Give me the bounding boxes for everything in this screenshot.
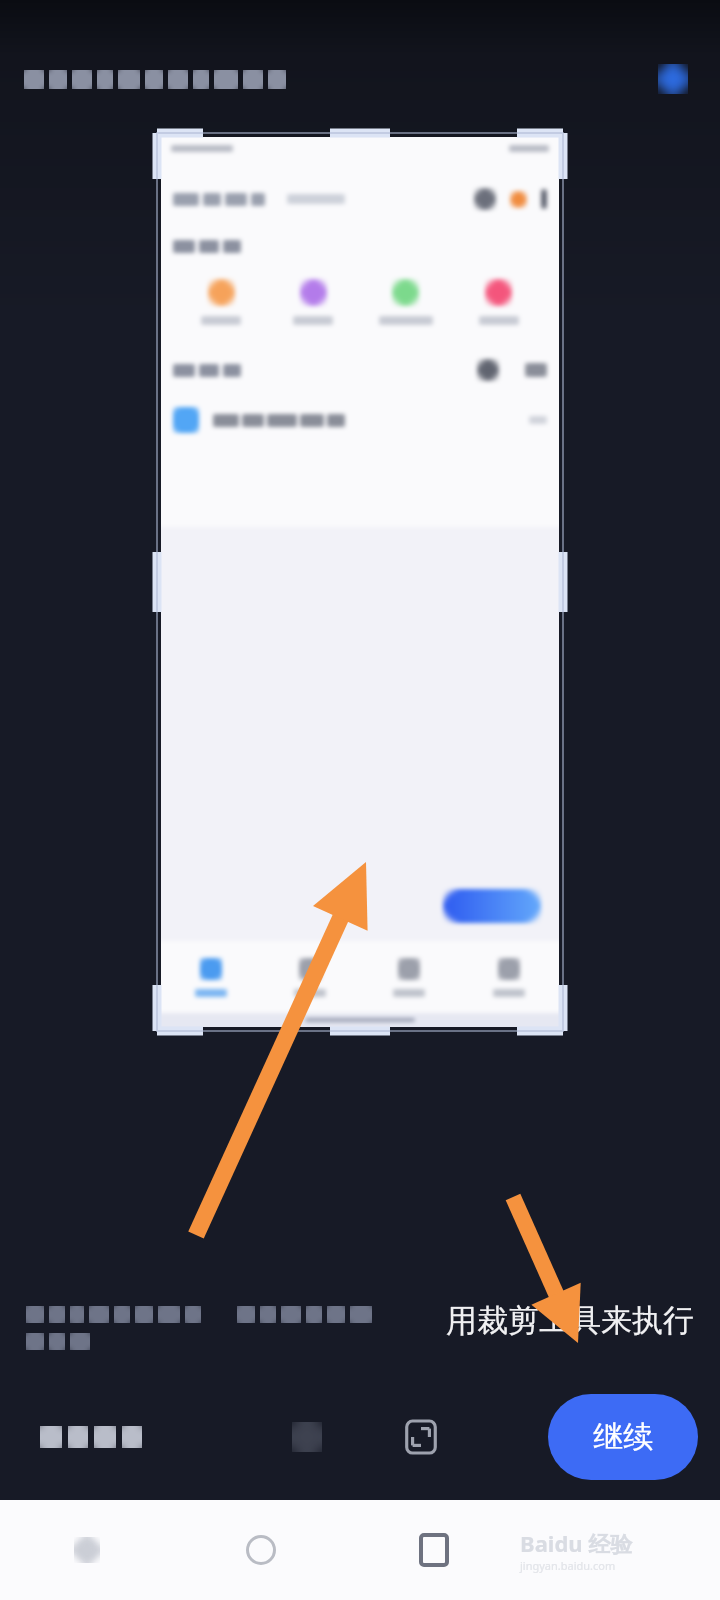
button[interactable]: Rotate	[276, 1406, 338, 1468]
staticText: 继续	[593, 1418, 653, 1456]
button[interactable]: Home	[174, 1500, 347, 1600]
button[interactable]: More options	[650, 56, 696, 102]
staticText: Baidu 经验	[520, 1528, 633, 1558]
button[interactable]: 继续	[548, 1394, 698, 1480]
button[interactable]: Recents	[347, 1500, 520, 1600]
button[interactable]: Back	[0, 1500, 174, 1600]
staticText: jingyan.baidu.com	[520, 1558, 616, 1573]
button[interactable]: Crop	[390, 1406, 452, 1468]
button[interactable]	[40, 1407, 180, 1467]
staticText: 用裁剪工具来执行	[446, 1301, 694, 1340]
